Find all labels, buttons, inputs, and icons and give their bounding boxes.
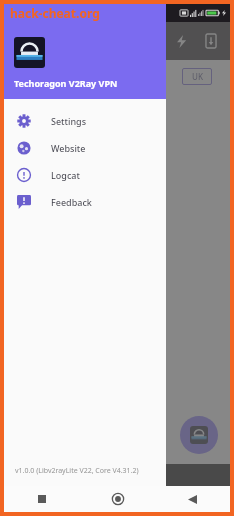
staticText: Logcat <box>51 169 80 181</box>
staticText: v1.0.0 (Libv2rayLite V22, Core V4.31.2) <box>15 466 139 476</box>
button[interactable]: Feedback <box>4 188 166 215</box>
button[interactable]: Logcat <box>4 161 166 188</box>
staticText: Settings <box>51 115 87 127</box>
staticText: UK <box>192 71 203 82</box>
button[interactable]: Home <box>80 486 155 512</box>
button[interactable]: Website <box>4 134 166 161</box>
button[interactable]: Settings <box>4 107 166 134</box>
staticText: Website <box>51 142 86 154</box>
button[interactable]: Speed test <box>168 28 194 54</box>
button[interactable]: UK <box>182 68 212 85</box>
staticText: hack-cheat.org <box>10 5 100 21</box>
staticText: Feedback <box>51 196 92 208</box>
button[interactable]: Connect <box>180 416 218 454</box>
button[interactable]: Back <box>155 486 230 512</box>
staticText: Techoragon V2Ray VPN <box>14 77 118 89</box>
button[interactable]: Import config <box>198 28 224 54</box>
button[interactable]: Recent apps <box>4 486 80 512</box>
